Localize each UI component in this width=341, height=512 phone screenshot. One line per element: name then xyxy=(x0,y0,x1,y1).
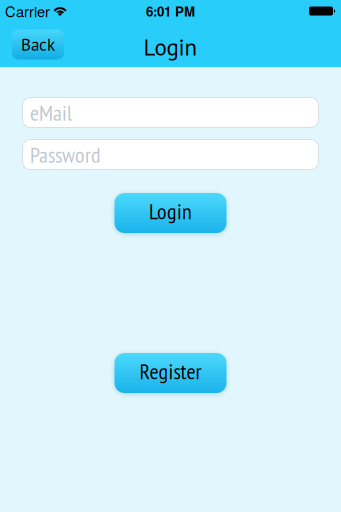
button[interactable]: eMail text field xyxy=(22,97,319,128)
staticText: eMail xyxy=(30,98,72,127)
button[interactable]: Register xyxy=(114,353,226,393)
staticText: Carrier xyxy=(5,0,50,21)
button[interactable]: Login xyxy=(114,193,226,233)
staticText: Back xyxy=(21,33,55,55)
button[interactable]: Password text field xyxy=(22,139,319,170)
button[interactable]: Back xyxy=(12,29,64,59)
staticText: 6:01 PM xyxy=(146,1,195,21)
staticText: Login xyxy=(143,32,197,62)
staticText: Password xyxy=(30,140,101,169)
staticText: Register xyxy=(139,357,201,385)
staticText: Login xyxy=(149,197,192,225)
